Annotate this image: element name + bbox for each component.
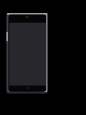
button[interactable]: Phone device preview	[0, 0, 86, 115]
